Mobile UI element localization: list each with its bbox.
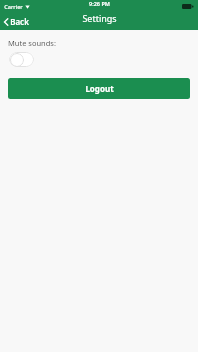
staticText: Back [10, 16, 29, 27]
staticText: Logout [85, 83, 114, 94]
button[interactable]: Mute sounds toggle [9, 52, 34, 67]
staticText: Mute sounds: [8, 38, 56, 48]
button[interactable]: Logout [8, 78, 190, 99]
staticText: Carrier [4, 3, 23, 10]
button[interactable]: Back [0, 14, 35, 29]
staticText: Settings [82, 12, 117, 24]
staticText: 9:26 PM [89, 0, 110, 7]
